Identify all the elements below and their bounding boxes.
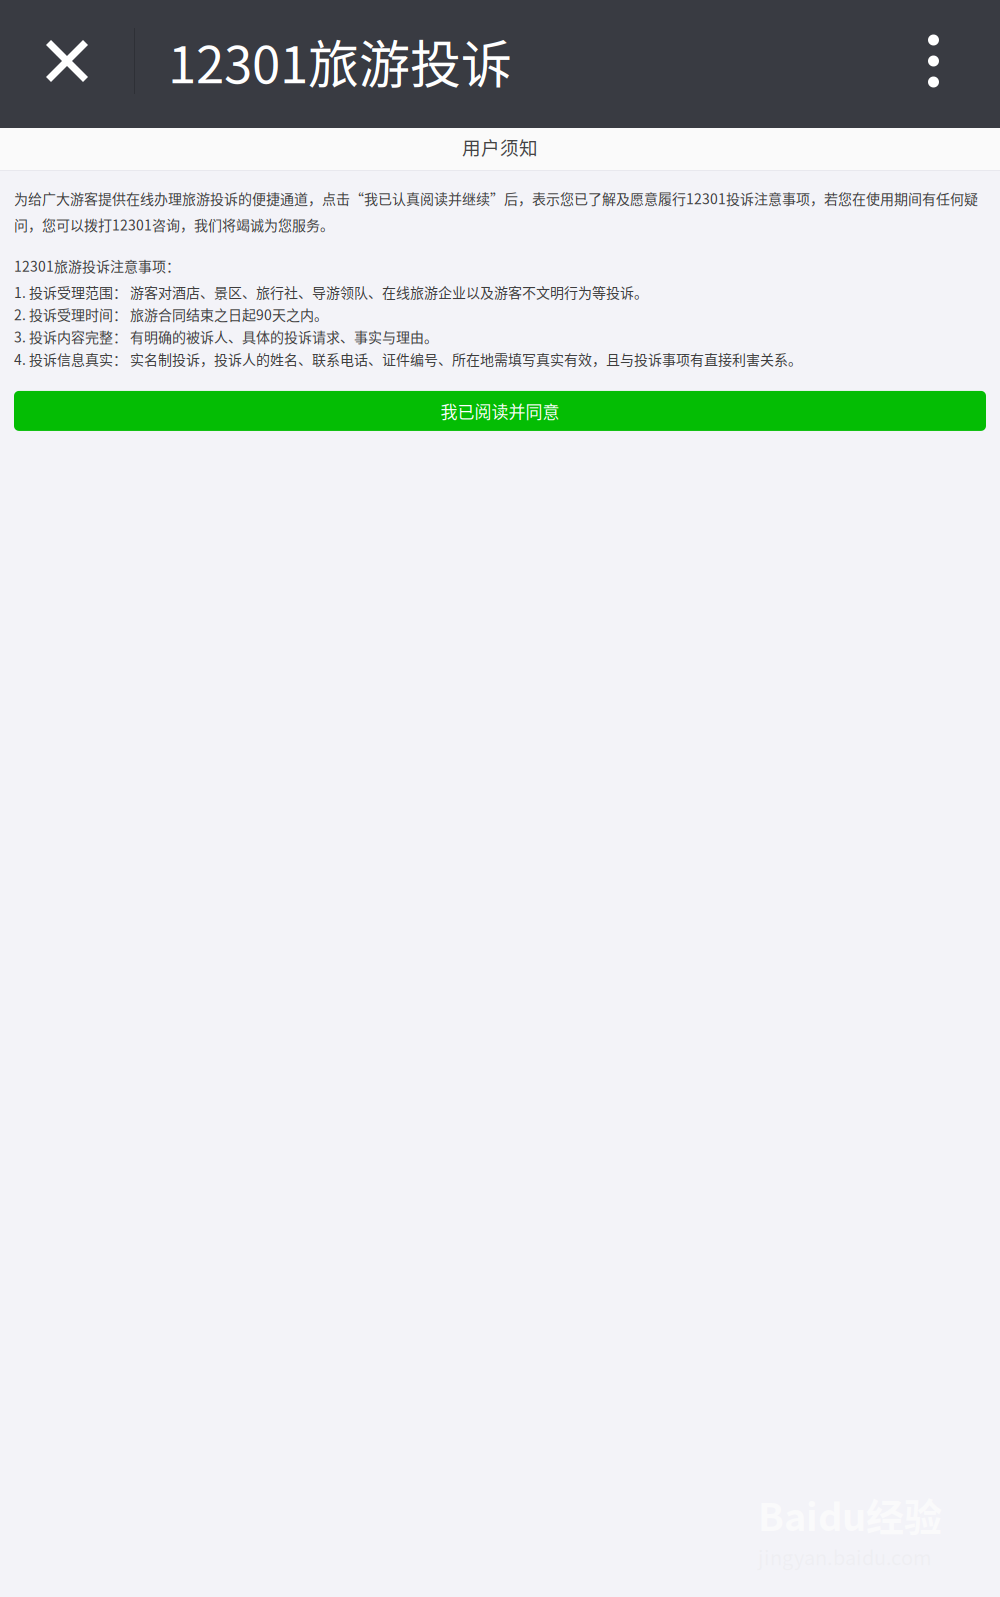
staticText: 12301旅游投诉 xyxy=(168,24,512,98)
staticText: 2. 投诉受理时间： 旅游合同结束之日起90天之内。 xyxy=(14,304,328,324)
staticText: 4. 投诉信息真实： 实名制投诉，投诉人的姓名、联系电话、证件编号、所在地需填写… xyxy=(14,349,802,369)
staticText: 我已阅读并同意 xyxy=(440,399,559,423)
button[interactable]: More options xyxy=(928,0,1000,125)
staticText: 3. 投诉内容完整： 有明确的被诉人、具体的投诉请求、事实与理由。 xyxy=(14,326,438,347)
button[interactable]: Close xyxy=(0,0,134,125)
staticText: 用户须知 xyxy=(462,133,538,160)
staticText: 为给广大游客提供在线办理旅游投诉的便捷通道，点击“我已认真阅读并继续”后，表示您… xyxy=(14,188,978,234)
staticText: 12301旅游投诉注意事项： xyxy=(14,255,180,276)
staticText: 1. 投诉受理范围： 游客对酒店、景区、旅行社、导游领队、在线旅游企业以及游客不… xyxy=(14,282,648,302)
button[interactable]: 我已阅读并同意 xyxy=(14,391,986,431)
